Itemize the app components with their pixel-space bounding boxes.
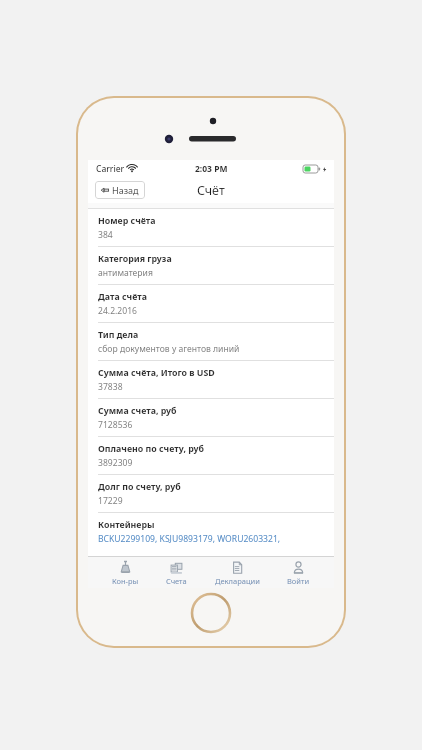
button[interactable]: Категория груза: [88, 247, 334, 284]
staticText: 37838: [98, 381, 123, 393]
button[interactable]: Контейнеры: [88, 513, 334, 550]
staticText: 3892309: [98, 457, 133, 469]
staticText: Номер счёта: [98, 215, 156, 227]
button[interactable]: Оплачено по счету, руб: [88, 437, 334, 474]
button[interactable]: Назад: [95, 181, 145, 199]
staticText: BCKU2299109, KSJU9893179, WORU2603321,: [98, 533, 281, 545]
button[interactable]: Номер счёта: [88, 209, 334, 246]
staticText: 2:03 PM: [195, 163, 228, 175]
staticText: Счёт: [197, 182, 225, 199]
staticText: Декларации: [215, 576, 260, 586]
button[interactable]: Войти: [284, 558, 313, 588]
staticText: 24.2.2016: [98, 305, 138, 317]
button[interactable]: Тип дела: [88, 323, 334, 360]
staticText: Категория груза: [98, 253, 172, 265]
staticText: 384: [98, 229, 113, 241]
staticText: 17229: [98, 495, 123, 507]
staticText: Дата счёта: [98, 291, 147, 303]
button[interactable]: Дата счёта: [88, 285, 334, 322]
button[interactable]: Сумма счета, руб: [88, 399, 334, 436]
button[interactable]: Декларации: [212, 558, 263, 588]
staticText: сбор документов у агентов линий: [98, 343, 240, 355]
button[interactable]: Сумма счёта, Итого в USD: [88, 361, 334, 398]
staticText: антиматерия: [98, 267, 153, 279]
staticText: Сумма счета, руб: [98, 405, 177, 417]
staticText: Сумма счёта, Итого в USD: [98, 367, 215, 379]
staticText: 7128536: [98, 419, 133, 431]
staticText: Назад: [112, 184, 139, 196]
staticText: Контейнеры: [98, 519, 155, 531]
staticText: Долг по счету, руб: [98, 481, 181, 493]
staticText: Carrier: [96, 163, 125, 175]
staticText: Оплачено по счету, руб: [98, 443, 205, 455]
staticText: Войти: [287, 576, 310, 586]
staticText: Тип дела: [98, 329, 139, 341]
button[interactable]: Счета: [163, 558, 190, 588]
button[interactable]: Долг по счету, руб: [88, 475, 334, 512]
staticText: Счета: [166, 576, 187, 586]
staticText: Кон-ры: [112, 576, 139, 586]
button[interactable]: Кон-ры: [109, 558, 142, 588]
